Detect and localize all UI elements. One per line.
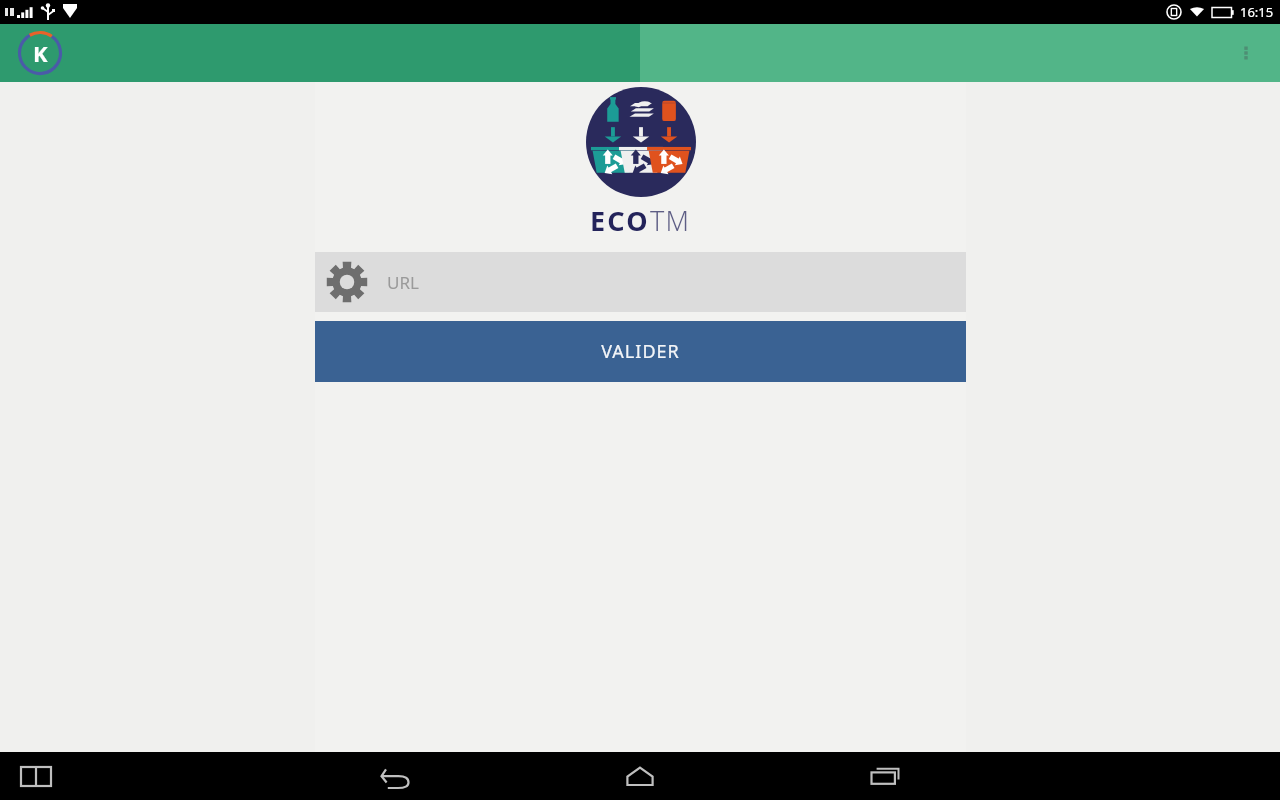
button[interactable]: App logo — [16, 29, 64, 77]
staticText: K — [33, 38, 48, 68]
staticText: URL — [387, 271, 419, 294]
staticText: VALIDER — [601, 339, 680, 364]
button[interactable]: URL — [315, 252, 966, 312]
button[interactable]: Home — [616, 752, 664, 800]
staticText: ECO — [590, 202, 650, 239]
staticText: 16:15 — [1240, 3, 1274, 21]
button[interactable]: More options — [1222, 29, 1270, 77]
button[interactable]: VALIDER — [315, 321, 966, 382]
button[interactable]: Split screen — [16, 756, 56, 796]
button[interactable]: Back — [371, 752, 419, 800]
staticText: TM — [650, 202, 691, 239]
button[interactable]: Recent apps — [861, 752, 909, 800]
